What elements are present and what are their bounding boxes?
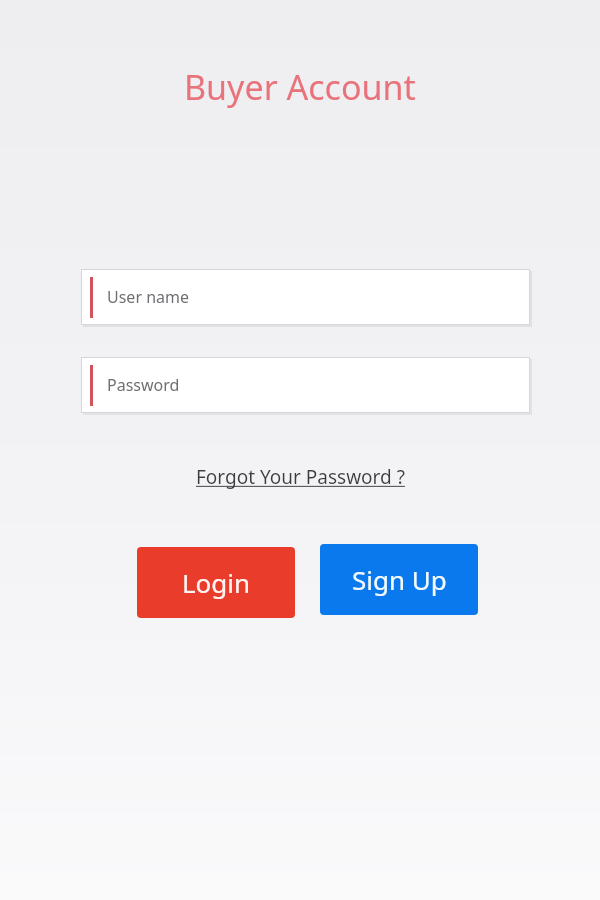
staticText: Login xyxy=(182,565,251,600)
staticText: User name xyxy=(107,286,190,308)
staticText: Buyer Account xyxy=(184,64,416,110)
button[interactable]: Forgot Your Password ? xyxy=(192,461,409,493)
staticText: Sign Up xyxy=(352,562,447,597)
button[interactable]: User name xyxy=(81,269,530,325)
button[interactable]: Login xyxy=(137,547,295,618)
button[interactable]: Password xyxy=(81,357,530,413)
staticText: Forgot Your Password ? xyxy=(196,464,405,490)
button[interactable]: Sign Up xyxy=(320,544,478,615)
staticText: Password xyxy=(107,374,180,396)
